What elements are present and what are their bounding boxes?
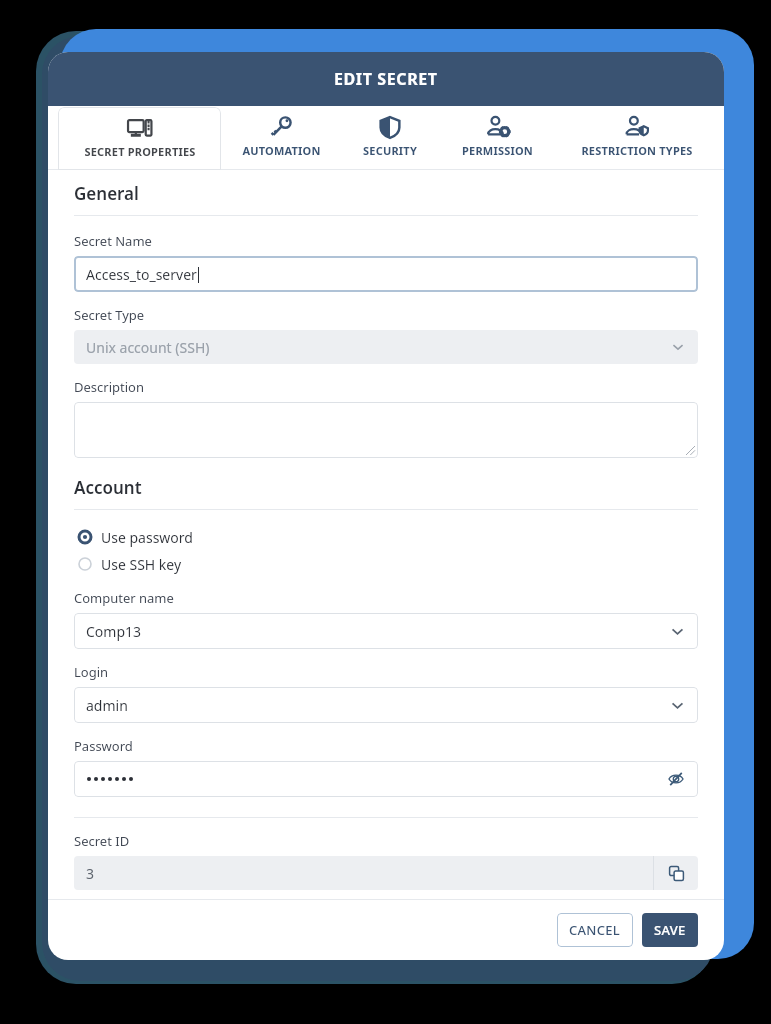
button[interactable]: PERMISSION bbox=[439, 106, 556, 170]
button[interactable]: Unix account (SSH) bbox=[74, 330, 698, 364]
button[interactable]: Comp13 bbox=[74, 613, 698, 649]
staticText: Use password bbox=[101, 528, 193, 547]
button[interactable] bbox=[74, 402, 698, 458]
staticText: Secret Name bbox=[74, 232, 152, 250]
staticText: Secret ID bbox=[74, 832, 130, 850]
staticText: Password bbox=[74, 737, 133, 755]
staticText: admin bbox=[86, 696, 128, 715]
button[interactable]: CANCEL bbox=[557, 913, 633, 947]
staticText: Use SSH key bbox=[101, 555, 182, 574]
staticText: EDIT SECRET bbox=[334, 68, 438, 90]
staticText: General bbox=[74, 182, 139, 205]
button[interactable]: AUTOMATION bbox=[221, 106, 341, 170]
button[interactable]: RESTRICTION TYPES bbox=[556, 106, 718, 170]
staticText: Login bbox=[74, 663, 109, 681]
staticText: Description bbox=[74, 378, 144, 396]
button[interactable]: admin bbox=[74, 687, 698, 723]
button[interactable]: Use password bbox=[74, 526, 193, 548]
staticText: SECRET PROPERTIES bbox=[84, 144, 196, 159]
staticText: SAVE bbox=[654, 921, 686, 939]
button[interactable]: Access_to_server bbox=[74, 256, 698, 292]
button[interactable]: Copy secret ID bbox=[654, 856, 698, 890]
staticText: Access_to_server bbox=[86, 265, 197, 284]
staticText: Comp13 bbox=[86, 622, 142, 641]
staticText: 3 bbox=[86, 864, 95, 883]
staticText: Secret Type bbox=[74, 306, 145, 324]
button[interactable]: Show password bbox=[664, 767, 688, 791]
button[interactable]: Use SSH key bbox=[74, 553, 182, 575]
staticText: AUTOMATION bbox=[242, 143, 321, 158]
staticText: SECURITY bbox=[363, 143, 417, 158]
staticText: PERMISSION bbox=[462, 143, 533, 158]
button[interactable]: SECURITY bbox=[341, 106, 439, 170]
button[interactable]: SAVE bbox=[642, 913, 698, 947]
button[interactable]: SECRET PROPERTIES bbox=[58, 107, 221, 170]
staticText: CANCEL bbox=[569, 921, 621, 939]
staticText: Unix account (SSH) bbox=[86, 338, 210, 357]
staticText: Computer name bbox=[74, 589, 174, 607]
staticText: Account bbox=[74, 476, 142, 499]
staticText: RESTRICTION TYPES bbox=[581, 143, 693, 158]
